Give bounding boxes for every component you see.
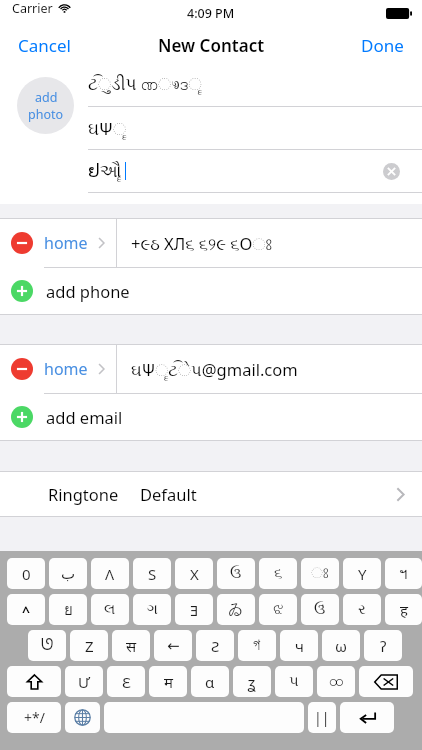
button[interactable]: Cancel [0, 28, 89, 63]
button[interactable]: ઘΨૄ [88, 107, 422, 149]
button[interactable]: ઉ [217, 558, 255, 589]
button[interactable]: ᘎ [28, 630, 66, 661]
button[interactable]: Ƨ [196, 630, 234, 661]
staticText: Υ [358, 564, 367, 584]
staticText: ฯ [399, 562, 408, 586]
button[interactable]: Z [70, 630, 108, 661]
button[interactable]: Ɛ [107, 666, 145, 697]
staticText: +૯ઠ ХЛ૬ ૬୨૯ ૬Oଃ [131, 232, 272, 254]
staticText: ﺏ [61, 565, 76, 582]
button[interactable]: ထ [317, 666, 355, 697]
staticText: Λ [105, 564, 115, 584]
staticText: ગ [147, 602, 158, 617]
staticText: S [148, 564, 157, 584]
staticText: ઘΨૄટ͡ેપ@gmail.com [131, 358, 298, 380]
staticText: Done [361, 34, 404, 57]
button[interactable]: ч [280, 630, 318, 661]
staticText: Z [85, 636, 94, 656]
staticText: ʓ [248, 672, 256, 692]
button[interactable]: Ǝ [175, 594, 213, 625]
staticText: add phone [46, 280, 130, 302]
button[interactable]: Remove [0, 345, 422, 393]
button[interactable]: Pause [308, 702, 336, 733]
button[interactable]: α [191, 666, 229, 697]
staticText: photo [28, 106, 64, 123]
staticText: Ǝ [190, 600, 199, 620]
staticText: ૬ [274, 566, 283, 581]
staticText: ʔ [380, 636, 387, 656]
staticText: Ư [78, 672, 90, 692]
staticText: Default [140, 483, 197, 505]
button[interactable]: Remove [0, 219, 422, 267]
button[interactable]: add email [0, 394, 422, 440]
staticText: स [126, 636, 137, 656]
button[interactable]: ર [343, 594, 381, 625]
button[interactable]: ह [385, 594, 422, 625]
staticText: ર [358, 602, 366, 617]
button[interactable]: Λ [91, 558, 129, 589]
staticText: +*/ [24, 708, 45, 727]
button[interactable]: ゐ [217, 594, 255, 625]
button[interactable]: ગ [133, 594, 171, 625]
button[interactable]: X [175, 558, 213, 589]
button[interactable]: S [133, 558, 171, 589]
button[interactable]: Backspace [359, 666, 413, 697]
button[interactable]: add [17, 77, 74, 134]
button[interactable]: Ringtone [0, 472, 422, 516]
staticText: X [190, 564, 199, 584]
button[interactable]: ω [322, 630, 360, 661]
button[interactable]: ﺏ [49, 558, 87, 589]
button[interactable]: म [149, 666, 187, 697]
button[interactable]: Clear text [383, 163, 400, 180]
staticText: ह [400, 600, 408, 620]
staticText: ^ [22, 602, 31, 621]
staticText: Carrier [12, 0, 53, 17]
staticText: add [35, 89, 58, 106]
button[interactable]: add phone [0, 268, 422, 314]
button[interactable]: Ư [65, 666, 103, 697]
staticText: ထ [329, 671, 344, 693]
button[interactable]: ฯ [385, 558, 422, 589]
staticText: ч [295, 636, 304, 656]
button[interactable]: Remove [11, 358, 33, 380]
staticText: Ringtone [48, 483, 119, 505]
button[interactable]: ઉ̇ [301, 594, 339, 625]
staticText: 0 [22, 564, 31, 584]
staticText: ω [335, 636, 347, 656]
button[interactable]: 0 [7, 558, 45, 589]
button[interactable]: લ [91, 594, 129, 625]
button[interactable]: ଃ [301, 558, 339, 589]
button[interactable]: Modifier [7, 594, 45, 625]
staticText: New Contact [158, 34, 265, 57]
button[interactable]: Space [104, 702, 304, 733]
staticText: add email [46, 406, 123, 428]
button[interactable]: Switch keyboard [65, 702, 100, 733]
button[interactable]: Done [343, 28, 422, 63]
button[interactable]: Remove [11, 232, 33, 254]
staticText: α [205, 672, 215, 692]
button[interactable]: ← [154, 630, 192, 661]
button[interactable]: ʔ [364, 630, 402, 661]
staticText: ટ͡ુડીપ ဏෳဒૄ [88, 72, 203, 98]
button[interactable]: Return [340, 702, 394, 733]
button[interactable]: પ [275, 666, 313, 697]
staticText: ଃ [311, 566, 329, 581]
button[interactable]: +*/ [7, 702, 61, 733]
button[interactable]: ટ͡ુડીપ ဏෳဒૄ [88, 64, 422, 106]
staticText: home [44, 358, 88, 380]
button[interactable]: Shift [7, 666, 61, 697]
button[interactable]: ʓ [233, 666, 271, 697]
staticText: પ [289, 674, 299, 689]
button[interactable]: ૬ [259, 558, 297, 589]
staticText: લ [104, 602, 116, 617]
staticText: 4:09 PM [187, 5, 235, 22]
button[interactable]: ଝ [259, 594, 297, 625]
button[interactable]: स [112, 630, 150, 661]
button[interactable]: ย [49, 594, 87, 625]
staticText: home [44, 232, 88, 254]
staticText: Ɛ [122, 672, 131, 692]
button[interactable]: ຢઔૄ [88, 150, 422, 192]
button[interactable]: Υ [343, 558, 381, 589]
staticText: গ [253, 638, 261, 653]
button[interactable]: গ [238, 630, 276, 661]
